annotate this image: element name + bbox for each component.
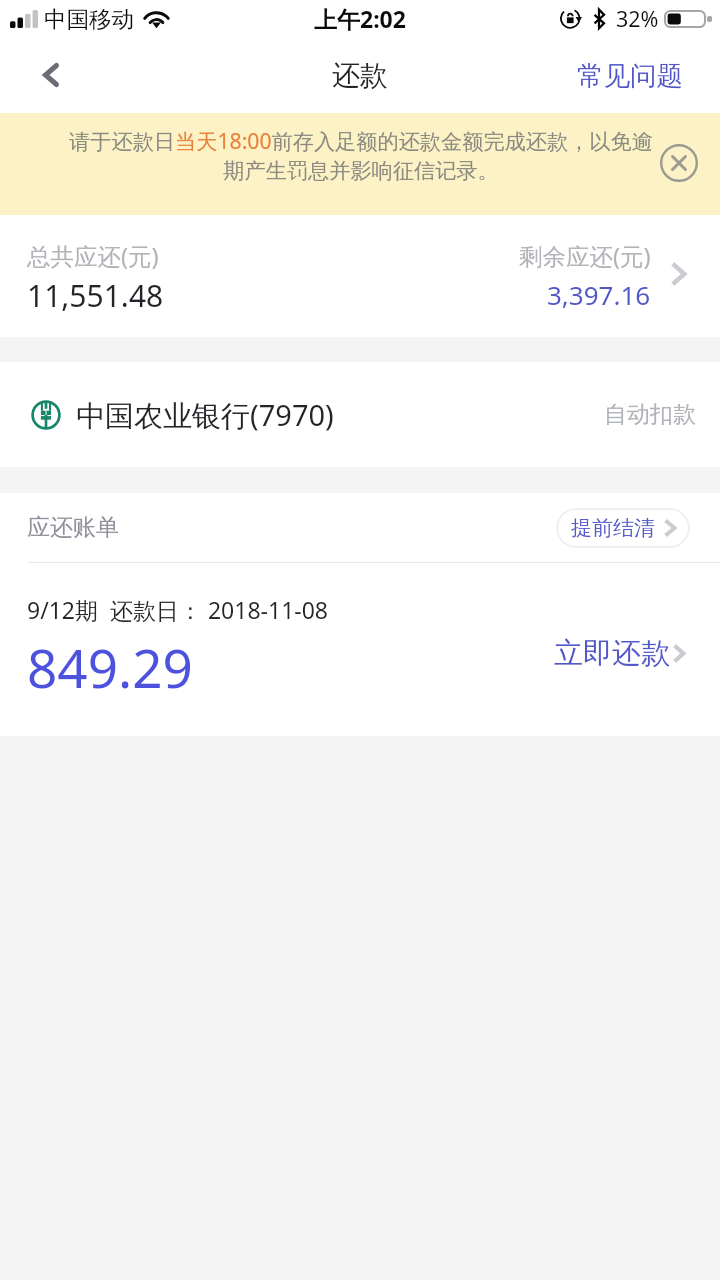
staticText: 中国移动	[44, 5, 134, 33]
button[interactable]: 9/12期 还款日： 2018-11-08	[0, 563, 720, 736]
staticText: 自动扣款	[604, 400, 696, 429]
staticText: 提前结清	[571, 515, 655, 541]
staticText: 立即还款	[554, 635, 670, 672]
staticText: 9/12期 还款日： 2018-11-08	[27, 594, 329, 625]
button[interactable]: 常见问题	[567, 51, 693, 100]
button[interactable]: Back	[20, 44, 82, 106]
staticText: 849.29	[27, 631, 193, 703]
staticText: 11,551.48	[27, 275, 164, 316]
staticText: 总共应还(元)	[27, 240, 159, 272]
staticText: 常见问题	[577, 59, 683, 92]
staticText: 3,397.16	[547, 277, 651, 312]
staticText: 应还账单	[27, 513, 119, 542]
staticText: 还款	[332, 58, 388, 93]
staticText: 剩余应还(元)	[519, 240, 651, 272]
staticText: 中国农业银行(7970)	[76, 395, 334, 435]
button[interactable]: 总共应还(元)	[0, 215, 720, 337]
button[interactable]: 提前结清	[556, 508, 690, 548]
button[interactable]: 中国农业银行(7970)	[0, 362, 720, 467]
staticText: 请于还款日当天18:00前存入足额的还款金额完成还款，以免逾期产生罚息并影响征信…	[64, 126, 658, 184]
staticText: 32%	[616, 4, 659, 33]
button[interactable]: Close	[655, 139, 703, 187]
staticText: 上午2:02	[314, 3, 406, 34]
button[interactable]: 立即还款	[554, 635, 686, 672]
